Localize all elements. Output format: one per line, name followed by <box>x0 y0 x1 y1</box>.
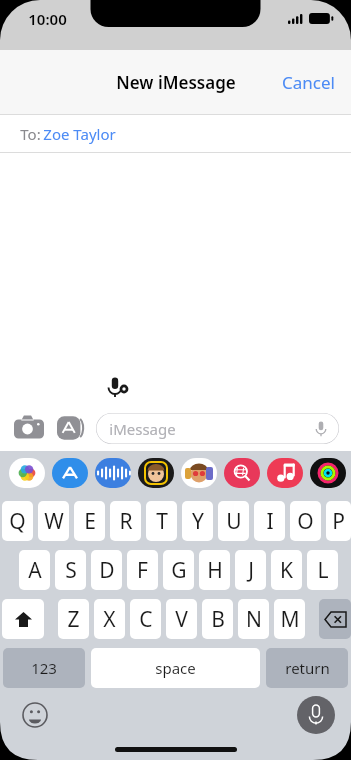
button[interactable]: space <box>91 648 260 688</box>
staticText: E <box>84 507 96 536</box>
button[interactable]: App Store <box>57 413 87 443</box>
button[interactable]: E <box>74 501 105 541</box>
button[interactable]: App 5 <box>181 458 217 488</box>
button[interactable]: Backspace <box>319 599 351 639</box>
staticText: H <box>207 556 223 585</box>
button[interactable]: Shift <box>2 599 44 639</box>
staticText: P <box>332 507 345 536</box>
button[interactable]: To: <box>0 115 351 153</box>
staticText: iMessage <box>109 419 176 439</box>
button[interactable]: App 6 <box>224 458 260 488</box>
button[interactable]: U <box>218 501 249 541</box>
staticText: W <box>44 507 64 536</box>
staticText: G <box>171 556 187 585</box>
staticText: V <box>175 605 188 634</box>
button[interactable]: return <box>266 648 348 688</box>
staticText: T <box>156 507 168 536</box>
button[interactable]: App 3 <box>95 458 131 488</box>
button[interactable]: X <box>94 599 125 639</box>
staticText: J <box>248 556 254 585</box>
staticText: 10:00 <box>28 9 67 29</box>
button[interactable]: A <box>19 550 50 590</box>
staticText: To: <box>18 124 43 144</box>
button[interactable]: P <box>326 501 351 541</box>
staticText: New iMessage <box>116 71 236 94</box>
staticText: F <box>137 556 148 585</box>
button[interactable]: G <box>163 550 194 590</box>
button[interactable]: V <box>166 599 197 639</box>
staticText: 123 <box>31 658 57 678</box>
staticText: I <box>266 507 274 536</box>
button[interactable]: Dictation <box>297 696 335 734</box>
staticText: C <box>139 605 153 634</box>
button[interactable]: N <box>238 599 269 639</box>
staticText: A <box>28 556 42 585</box>
button[interactable]: M <box>274 599 305 639</box>
staticText: space <box>155 658 196 678</box>
staticText: U <box>226 507 242 536</box>
staticText: X <box>103 605 116 634</box>
button[interactable]: H <box>199 550 230 590</box>
other: Dictation settings <box>92 371 142 413</box>
button[interactable]: Q <box>2 501 33 541</box>
button[interactable]: D <box>91 550 122 590</box>
button[interactable]: S <box>55 550 86 590</box>
staticText: L <box>317 556 329 585</box>
button[interactable]: App 7 <box>267 458 303 488</box>
button[interactable]: App 1 <box>9 458 45 488</box>
staticText: Q <box>9 507 26 536</box>
button[interactable]: Y <box>182 501 213 541</box>
button[interactable]: I <box>254 501 285 541</box>
button[interactable]: App 2 <box>52 458 88 488</box>
button[interactable]: O <box>290 501 321 541</box>
staticText: N <box>246 605 262 634</box>
staticText: D <box>99 556 115 585</box>
staticText: M <box>280 605 300 634</box>
other: Dictate <box>314 422 328 436</box>
button[interactable]: T <box>146 501 177 541</box>
button[interactable]: 123 <box>3 648 85 688</box>
button[interactable]: Camera <box>14 413 44 443</box>
staticText: Y <box>192 507 204 536</box>
button[interactable]: App 4 <box>138 458 174 488</box>
button[interactable]: R <box>110 501 141 541</box>
button[interactable]: K <box>271 550 302 590</box>
button[interactable]: J <box>235 550 266 590</box>
staticText: Cancel <box>282 71 335 94</box>
staticText: Z <box>67 605 80 634</box>
button[interactable]: C <box>130 599 161 639</box>
button[interactable]: F <box>127 550 158 590</box>
button[interactable]: Cancel <box>266 59 351 106</box>
button[interactable]: L <box>307 550 338 590</box>
staticText: B <box>211 605 225 634</box>
staticText: K <box>280 556 293 585</box>
staticText: Zoe Taylor <box>43 124 116 144</box>
button[interactable]: iMessage <box>96 413 339 444</box>
staticText: return <box>285 658 330 678</box>
staticText: R <box>119 507 133 536</box>
button[interactable]: App 8 <box>310 458 346 488</box>
button[interactable]: Z <box>58 599 89 639</box>
button[interactable]: W <box>38 501 69 541</box>
button[interactable]: B <box>202 599 233 639</box>
staticText: S <box>65 556 77 585</box>
button[interactable]: Emoji keyboard <box>22 702 48 728</box>
staticText: O <box>297 507 314 536</box>
